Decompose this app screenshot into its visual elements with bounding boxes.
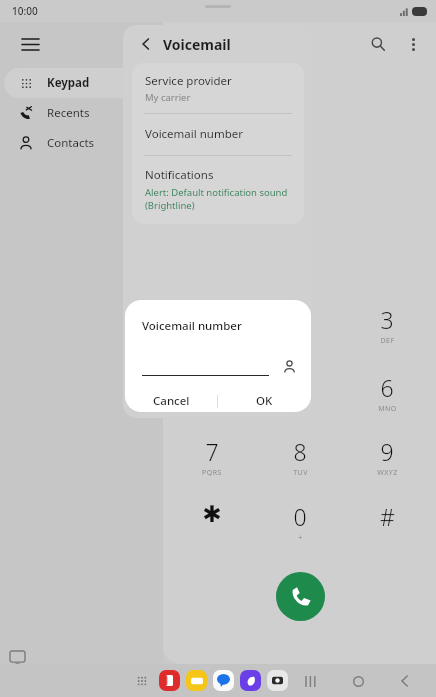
staticText: Voicemail number xyxy=(145,126,244,142)
button[interactable]: Choose contact xyxy=(279,356,299,376)
button[interactable]: Cancel xyxy=(125,390,217,412)
staticText: My carrier xyxy=(145,91,191,104)
staticText: DEF xyxy=(380,336,395,346)
staticText: MNO xyxy=(378,404,397,414)
button[interactable]: App xyxy=(213,670,234,691)
button[interactable]: More options xyxy=(396,27,430,61)
staticText: 7 xyxy=(205,436,219,467)
button[interactable]: 8 xyxy=(270,436,330,478)
button[interactable]: All apps xyxy=(131,670,153,692)
button[interactable]: Recent apps xyxy=(296,666,326,696)
staticText: + xyxy=(298,533,303,543)
staticText: Notifications xyxy=(145,167,214,183)
staticText: Contacts xyxy=(47,135,95,151)
button[interactable]: Call xyxy=(276,572,325,621)
button[interactable]: Voicemail number xyxy=(132,114,304,155)
staticText: OK xyxy=(256,393,273,409)
staticText: Keypad xyxy=(47,75,90,91)
staticText: 8 xyxy=(293,436,307,467)
button[interactable]: Notifications xyxy=(132,156,304,224)
staticText: Cancel xyxy=(153,393,190,409)
staticText: 0 xyxy=(293,501,307,532)
staticText: # xyxy=(380,501,395,532)
button[interactable]: Search xyxy=(360,26,396,62)
staticText: Voicemail xyxy=(163,35,231,54)
staticText: Recents xyxy=(47,105,90,121)
button[interactable]: 7 xyxy=(182,436,242,478)
button[interactable]: 3 xyxy=(357,304,417,346)
button[interactable]: App xyxy=(267,670,288,691)
button[interactable]: App xyxy=(186,670,207,691)
button[interactable]: App xyxy=(159,670,180,691)
button[interactable]: Back xyxy=(390,666,420,696)
staticText: Voicemail number xyxy=(142,318,242,334)
button[interactable]: # xyxy=(357,501,417,543)
button[interactable] xyxy=(142,362,269,376)
button[interactable]: Hide keypad xyxy=(4,645,30,671)
staticText: TUV xyxy=(293,468,308,478)
button[interactable]: ✱ xyxy=(182,501,242,543)
button[interactable]: Menu xyxy=(8,22,52,66)
button[interactable]: Home xyxy=(343,666,373,696)
button[interactable]: 9 xyxy=(357,436,417,478)
button[interactable]: App xyxy=(240,670,261,691)
staticText: 10:00 xyxy=(12,4,38,18)
button[interactable]: 6 xyxy=(357,372,417,414)
staticText: PQRS xyxy=(202,468,222,478)
button[interactable]: Keypad xyxy=(4,68,159,98)
staticText: Service provider xyxy=(145,73,232,89)
button[interactable]: 0 xyxy=(270,501,330,543)
staticText: WXYZ xyxy=(377,468,398,478)
staticText: 3 xyxy=(380,304,394,335)
staticText: 6 xyxy=(380,372,394,403)
button[interactable]: Service provider xyxy=(132,63,304,113)
staticText: ✱ xyxy=(202,501,222,528)
button[interactable]: Contacts xyxy=(4,128,159,158)
button[interactable]: Back xyxy=(133,31,159,57)
button[interactable]: Recents xyxy=(4,98,159,128)
button[interactable]: OK xyxy=(218,390,311,412)
staticText: Alert: Default notification sound (Brigh… xyxy=(145,186,288,212)
staticText: 9 xyxy=(380,436,394,467)
